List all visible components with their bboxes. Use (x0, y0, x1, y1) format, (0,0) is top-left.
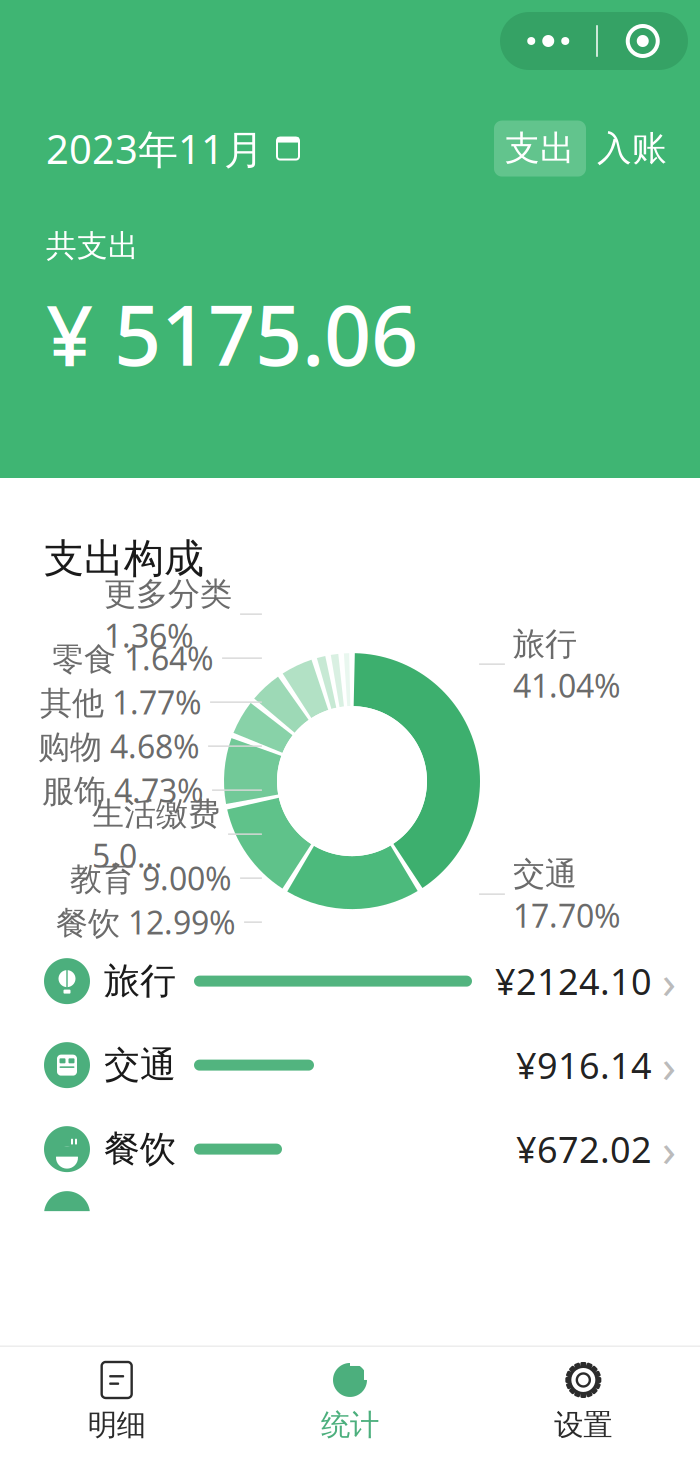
button[interactable]: 交通 (0, 1023, 700, 1107)
staticText: 明细 (88, 1407, 146, 1443)
staticText: ¥672.02 (516, 1125, 652, 1173)
button[interactable]: 明细 (0, 1347, 233, 1469)
staticText: 购物 4.68% (38, 725, 200, 767)
staticText: 支出 (505, 127, 575, 170)
staticText: 2023年11月 (46, 122, 264, 175)
staticText: 设置 (554, 1407, 612, 1443)
button[interactable]: 支出 (494, 121, 586, 177)
button[interactable]: 设置 (467, 1347, 700, 1469)
staticText: 零食 1.64% (52, 637, 214, 679)
staticText: 餐饮 (104, 1127, 176, 1171)
button[interactable]: 餐饮 (0, 1107, 700, 1191)
staticText: › (662, 1035, 676, 1095)
staticText: 生活缴费 5.0… (92, 792, 220, 877)
staticText: 交通 17.70% (513, 852, 621, 937)
staticText: 统计 (321, 1407, 379, 1443)
staticText: › (662, 951, 676, 1011)
staticText: 其他 1.77% (40, 681, 202, 723)
staticText: ¥2124.10 (495, 957, 652, 1005)
staticText: 旅行 41.04% (513, 622, 621, 707)
button[interactable]: 统计 (233, 1347, 467, 1469)
staticText: 旅行 (104, 959, 176, 1003)
button[interactable]: 2023年11月 (0, 116, 300, 181)
staticText: ¥916.14 (516, 1041, 652, 1089)
staticText: › (662, 1119, 676, 1179)
staticText: 入账 (597, 127, 667, 170)
staticText: 更多分类 1.36% (104, 572, 232, 657)
staticText: ¥ 5175.06 (46, 279, 418, 389)
staticText: 支出构成 (44, 534, 204, 583)
button[interactable]: Menu (500, 12, 688, 70)
staticText: 共支出 (46, 227, 139, 265)
staticText: 教育 9.00% (70, 857, 232, 899)
button[interactable]: 入账 (586, 121, 678, 177)
button[interactable]: 旅行 (0, 939, 700, 1023)
staticText: 服饰 4.73% (42, 769, 204, 811)
staticText: 餐饮 12.99% (56, 901, 236, 943)
staticText: 交通 (104, 1043, 176, 1087)
